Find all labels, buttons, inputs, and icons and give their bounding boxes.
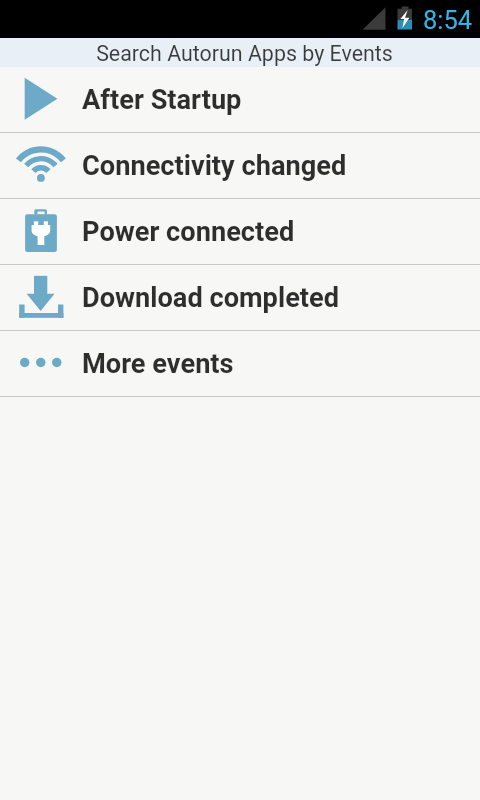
- button[interactable]: Connectivity changed: [0, 133, 480, 198]
- button[interactable]: More events: [0, 331, 480, 396]
- button[interactable]: Download completed: [0, 265, 480, 330]
- staticText: More events: [82, 348, 234, 380]
- other: Signal strength and battery charging: [0, 0, 480, 38]
- button[interactable]: After Startup: [0, 67, 480, 132]
- staticText: After Startup: [82, 84, 242, 116]
- staticText: Search Autorun Apps by Events: [96, 41, 393, 66]
- button[interactable]: Power connected: [0, 199, 480, 264]
- staticText: 8:54: [423, 5, 473, 35]
- staticText: Connectivity changed: [82, 150, 347, 182]
- staticText: Power connected: [82, 216, 295, 248]
- staticText: Download completed: [82, 282, 340, 314]
